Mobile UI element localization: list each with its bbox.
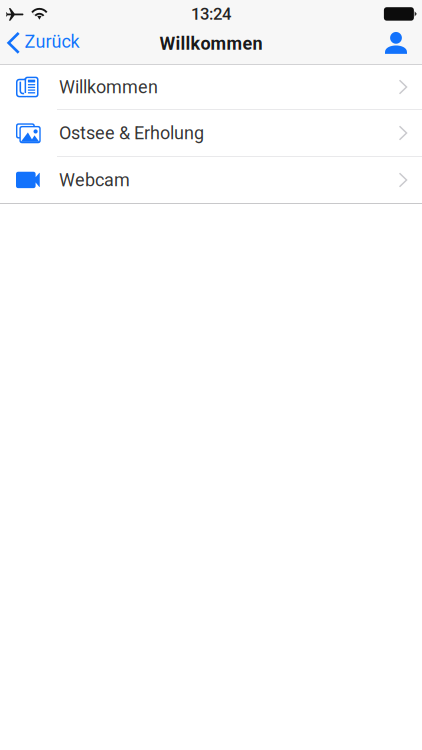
staticText: Willkommen bbox=[59, 76, 158, 98]
staticText: Willkommen bbox=[159, 33, 262, 54]
staticText: 13:24 bbox=[191, 4, 231, 24]
button[interactable]: Account bbox=[374, 28, 422, 58]
button[interactable]: Webcam bbox=[0, 157, 422, 203]
staticText: Zurück bbox=[24, 31, 79, 52]
staticText: Webcam bbox=[59, 169, 130, 191]
button[interactable]: Zurück bbox=[0, 27, 87, 59]
button[interactable]: Willkommen bbox=[0, 65, 422, 109]
staticText: Ostsee & Erholung bbox=[59, 122, 204, 144]
button[interactable]: Ostsee & Erholung bbox=[0, 110, 422, 156]
